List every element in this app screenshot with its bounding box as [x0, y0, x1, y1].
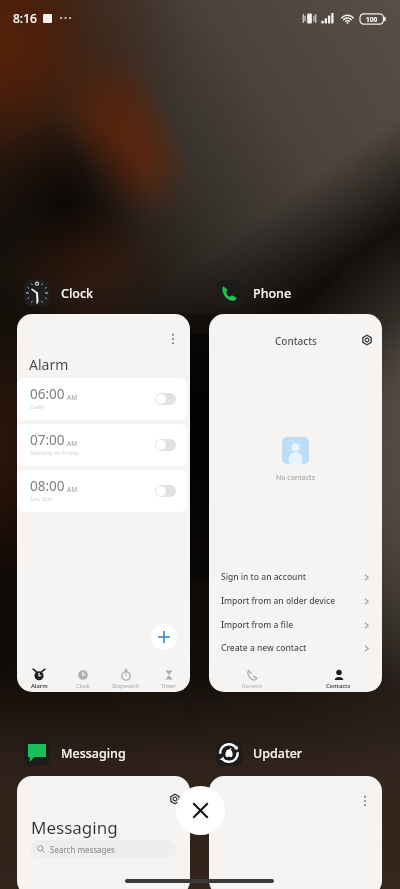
- button[interactable]: Close all: [176, 786, 225, 835]
- button[interactable]: Sign in to an account: [209, 565, 382, 589]
- button[interactable]: Stopwatch: [104, 669, 147, 689]
- button[interactable]: More options: [209, 776, 382, 889]
- button[interactable]: Contacts: [209, 314, 382, 692]
- staticText: Import from an older device: [221, 595, 336, 607]
- staticText: AM: [67, 485, 78, 494]
- staticText: Clock: [76, 682, 90, 689]
- button[interactable]: Phone: [216, 280, 292, 306]
- staticText: Timer: [161, 682, 176, 689]
- staticText: Clock: [61, 285, 94, 302]
- staticText: AM: [67, 393, 78, 402]
- button[interactable]: Settings: [361, 334, 373, 346]
- button[interactable]: Contacts: [295, 669, 382, 689]
- button[interactable]: [155, 439, 176, 451]
- staticText: Sign in to an account: [221, 571, 306, 583]
- button[interactable]: Alarm: [17, 669, 61, 689]
- staticText: Daily: [30, 403, 44, 411]
- staticText: Alarm: [31, 682, 48, 689]
- staticText: Recents: [242, 682, 263, 689]
- button[interactable]: Create a new contact: [209, 636, 382, 660]
- button[interactable]: Import from an older device: [209, 589, 382, 613]
- staticText: Sat, Sun: [30, 495, 53, 503]
- staticText: Contacts: [326, 682, 351, 689]
- button[interactable]: [155, 485, 176, 497]
- staticText: Stopwatch: [112, 682, 140, 689]
- button[interactable]: Add alarm: [151, 624, 177, 650]
- staticText: AM: [67, 439, 78, 448]
- staticText: 07:00: [30, 431, 65, 449]
- button[interactable]: More options: [358, 794, 372, 808]
- button[interactable]: Clock: [61, 669, 104, 689]
- staticText: 06:00: [30, 385, 65, 403]
- button[interactable]: 07:00: [17, 424, 187, 466]
- button[interactable]: Messaging: [24, 740, 126, 766]
- button[interactable]: Timer: [147, 669, 190, 689]
- button[interactable]: [155, 393, 176, 405]
- staticText: Import from a file: [221, 619, 294, 631]
- button[interactable]: More options: [17, 314, 190, 692]
- staticText: Create a new contact: [221, 642, 307, 654]
- staticText: No contacts: [276, 473, 315, 483]
- staticText: Phone: [253, 285, 292, 302]
- staticText: Monday to Friday: [30, 449, 80, 457]
- staticText: Search messages: [50, 844, 115, 855]
- staticText: Alarm: [29, 355, 69, 374]
- button[interactable]: Search messages: [30, 840, 177, 858]
- button[interactable]: Settings: [17, 776, 190, 889]
- button[interactable]: Recents: [209, 669, 295, 689]
- button[interactable]: Clock: [24, 280, 94, 306]
- button[interactable]: Updater: [216, 740, 303, 766]
- staticText: Messaging: [31, 816, 118, 839]
- staticText: Messaging: [61, 745, 126, 762]
- button[interactable]: More options: [166, 332, 180, 346]
- button[interactable]: Import from a file: [209, 613, 382, 637]
- staticText: 100: [366, 15, 378, 24]
- staticText: Updater: [253, 745, 303, 762]
- staticText: Contacts: [275, 334, 317, 348]
- button[interactable]: 06:00: [17, 378, 187, 420]
- staticText: 08:00: [30, 477, 65, 495]
- button[interactable]: Settings: [169, 793, 181, 805]
- staticText: 8:16: [13, 10, 37, 26]
- button[interactable]: 08:00: [17, 470, 187, 512]
